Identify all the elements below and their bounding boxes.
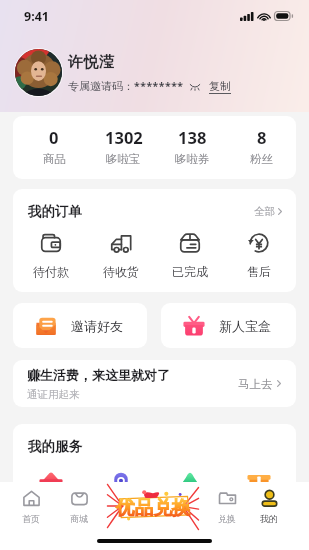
staticText: 首页 — [22, 513, 40, 524]
staticText: 马上去 — [238, 377, 273, 391]
button[interactable]: 邀请好友 — [13, 303, 147, 348]
button[interactable]: 138 — [158, 116, 227, 179]
button[interactable]: 宝箱 — [224, 464, 293, 488]
staticText: 哆啦券 — [175, 152, 210, 166]
button[interactable]: 全部 — [254, 203, 282, 220]
button[interactable]: 首页 — [9, 489, 53, 524]
staticText: 我的 — [260, 513, 278, 524]
button[interactable]: 活动 — [86, 464, 155, 488]
staticText: 8 — [257, 126, 267, 148]
staticText: 优品兑换 — [116, 496, 191, 519]
button[interactable]: 待收货 — [86, 232, 155, 279]
staticText: 复制 — [209, 79, 231, 93]
staticText: 已完成 — [172, 264, 208, 279]
staticText: 邀请好友 — [71, 318, 123, 334]
button[interactable]: 8 — [227, 116, 296, 179]
button[interactable]: 红包 — [16, 464, 86, 488]
staticText: 我的服务 — [28, 438, 82, 455]
button[interactable]: 兑换 — [205, 489, 249, 524]
staticText: 许悦滢 — [68, 53, 115, 72]
staticText: 全部 — [254, 205, 275, 218]
staticText: 138 — [178, 126, 207, 148]
staticText: 商品 — [43, 152, 66, 166]
button[interactable]: 优品兑换 — [107, 490, 199, 522]
button[interactable]: 优惠 — [155, 464, 224, 488]
button[interactable]: 赚生活费，来这里就对了 — [13, 360, 296, 407]
staticText: 粉丝 — [250, 152, 273, 166]
button[interactable]: 0 — [19, 116, 89, 179]
staticText: 通证用起来 — [27, 388, 80, 401]
button[interactable]: 商城 — [57, 489, 101, 524]
button[interactable]: Avatar — [15, 49, 62, 96]
staticText: 我的订单 — [28, 203, 82, 220]
staticText: 待收货 — [103, 264, 139, 279]
button[interactable]: Show invite code — [190, 83, 200, 90]
button[interactable]: 复制 — [209, 79, 231, 93]
button[interactable]: 已完成 — [155, 232, 224, 279]
staticText: 新人宝盒 — [219, 318, 271, 334]
staticText: 哆啦宝 — [106, 152, 141, 166]
staticText: 售后 — [247, 264, 271, 279]
button[interactable]: 售后 — [224, 232, 293, 279]
staticText: 0 — [49, 126, 59, 148]
button[interactable]: 1302 — [89, 116, 158, 179]
button[interactable]: 待付款 — [16, 232, 86, 279]
staticText: ******** — [134, 79, 184, 93]
staticText: 赚生活费，来这里就对了 — [27, 367, 170, 383]
staticText: 1302 — [105, 126, 143, 148]
staticText: 商城 — [70, 513, 88, 524]
staticText: 专属邀请码： — [68, 79, 134, 93]
staticText: 9:41 — [24, 8, 49, 25]
staticText: 待付款 — [33, 264, 69, 279]
button[interactable]: 我的 — [247, 489, 291, 524]
staticText: 兑换 — [218, 513, 236, 524]
button[interactable]: 新人宝盒 — [161, 303, 296, 348]
